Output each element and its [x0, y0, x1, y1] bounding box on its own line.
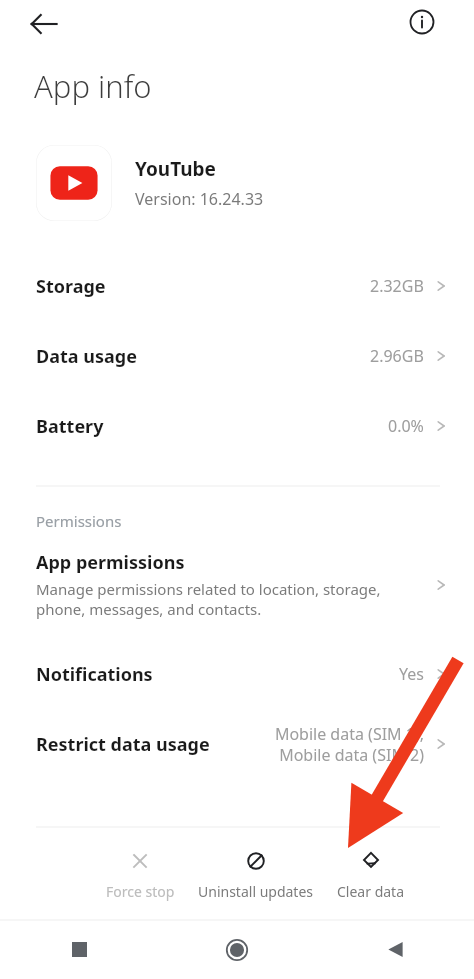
staticText: 0.0%	[388, 415, 424, 437]
button[interactable]: Back	[316, 920, 474, 979]
button[interactable]: Restrict data usage	[0, 709, 474, 779]
staticText: Restrict data usage	[36, 732, 210, 757]
staticText: App permissions	[36, 550, 185, 575]
staticText: Permissions	[36, 511, 122, 531]
staticText: 2.32GB	[370, 275, 424, 297]
staticText: App info	[34, 65, 152, 107]
button[interactable]: App details info	[404, 4, 440, 40]
staticText: 2.96GB	[370, 345, 424, 367]
button[interactable]: Data usage	[0, 321, 474, 391]
staticText: Clear data	[337, 882, 405, 901]
button[interactable]: Battery	[0, 391, 474, 461]
staticText: Version: 16.24.33	[135, 188, 264, 210]
button[interactable]: Back	[26, 6, 62, 42]
button[interactable]: Force stop	[82, 842, 198, 907]
staticText: Mobile data (SIM 1), Mobile data (SIM 2)	[274, 723, 424, 766]
button[interactable]: Storage	[0, 251, 474, 321]
button[interactable]: App permissions	[0, 546, 474, 623]
button[interactable]: Clear data	[313, 842, 428, 907]
staticText: Battery	[36, 414, 104, 439]
staticText: YouTube	[135, 156, 216, 182]
staticText: Force stop	[106, 882, 175, 901]
staticText: Yes	[399, 663, 424, 685]
staticText: Notifications	[36, 662, 153, 687]
staticText: Storage	[36, 274, 106, 299]
staticText: Manage permissions related to location, …	[36, 579, 381, 619]
button[interactable]: Recent apps	[0, 920, 158, 979]
button[interactable]: Home	[158, 920, 316, 979]
staticText: Uninstall updates	[198, 882, 313, 901]
button[interactable]: Uninstall updates	[198, 842, 313, 907]
button[interactable]: Notifications	[0, 639, 474, 709]
staticText: Data usage	[36, 344, 137, 369]
